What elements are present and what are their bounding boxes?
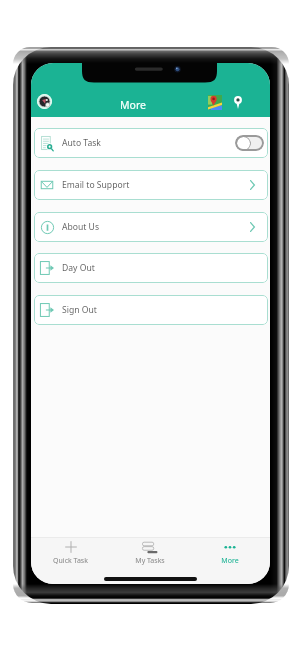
staticText: Day Out (62, 262, 95, 274)
button[interactable]: About Us (34, 212, 268, 242)
staticText: Quick Task (53, 556, 88, 565)
button[interactable]: Location (234, 96, 242, 109)
button[interactable]: Profile (37, 94, 52, 109)
staticText: Email to Support (62, 179, 130, 191)
button[interactable]: Email to Support (34, 170, 268, 200)
staticText: My Tasks (135, 556, 165, 565)
staticText: Auto Task (62, 137, 101, 149)
button[interactable]: Day Out (34, 253, 268, 283)
button[interactable]: My Tasks (110, 537, 190, 565)
staticText: More (221, 556, 239, 565)
button[interactable]: Map (208, 95, 222, 110)
button[interactable]: Auto Task (34, 128, 268, 158)
button[interactable]: Quick Task (31, 537, 110, 565)
staticText: More (120, 98, 146, 112)
staticText: Sign Out (62, 304, 97, 316)
button[interactable]: Sign Out (34, 295, 268, 325)
button[interactable]: More (190, 537, 270, 565)
staticText: About Us (62, 221, 100, 233)
